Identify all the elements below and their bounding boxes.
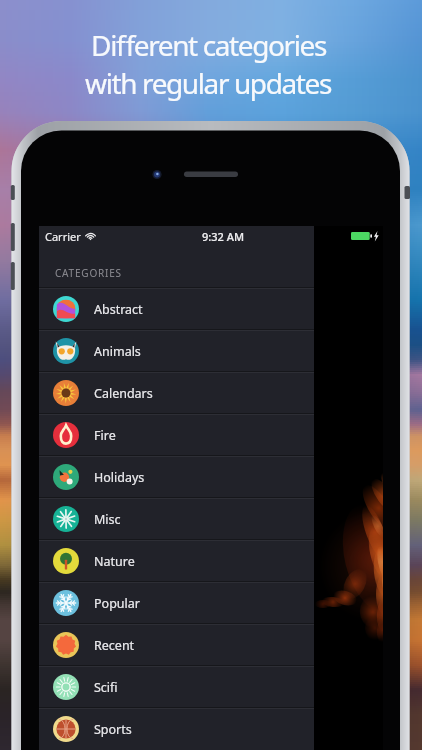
- staticText: Animals: [94, 343, 141, 360]
- staticText: Carrier: [45, 229, 81, 244]
- staticText: CATEGORIES: [55, 266, 122, 280]
- staticText: Abstract: [94, 301, 143, 318]
- button[interactable]: Holidays: [39, 455, 314, 497]
- button[interactable]: Misc: [39, 497, 314, 539]
- button[interactable]: Fire: [39, 413, 314, 455]
- staticText: 9:32 AM: [202, 229, 245, 244]
- button[interactable]: Calendars: [39, 371, 314, 413]
- button[interactable]: Popular: [39, 581, 314, 623]
- staticText: Different categories: [91, 26, 326, 64]
- staticText: Scifi: [94, 679, 118, 696]
- staticText: Nature: [94, 553, 135, 570]
- staticText: Holidays: [94, 469, 145, 486]
- staticText: Recent: [94, 637, 135, 654]
- staticText: Calendars: [94, 385, 153, 402]
- button[interactable]: Scifi: [39, 665, 314, 707]
- staticText: Sports: [94, 721, 132, 738]
- staticText: Misc: [94, 511, 121, 528]
- staticText: Popular: [94, 595, 140, 612]
- staticText: with regular updates: [85, 64, 331, 102]
- button[interactable]: Recent: [39, 623, 314, 665]
- button[interactable]: Abstract: [39, 287, 314, 329]
- button[interactable]: Sports: [39, 707, 314, 749]
- button[interactable]: Animals: [39, 329, 314, 371]
- button[interactable]: Nature: [39, 539, 314, 581]
- staticText: Fire: [94, 427, 116, 444]
